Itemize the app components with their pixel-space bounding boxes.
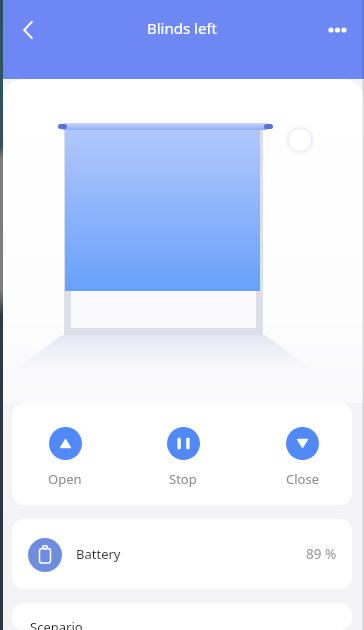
staticText: Stop xyxy=(169,470,197,488)
button[interactable]: Back xyxy=(6,8,50,52)
button[interactable]: Open xyxy=(39,403,91,505)
button[interactable]: Close xyxy=(276,403,328,505)
staticText: Close xyxy=(286,470,319,488)
staticText: Scenario xyxy=(30,618,83,630)
button[interactable]: More options xyxy=(314,8,358,52)
staticText: Open xyxy=(48,470,82,488)
staticText: Battery xyxy=(76,545,121,563)
button[interactable]: Power xyxy=(289,129,311,151)
staticText: 89 % xyxy=(306,545,337,563)
staticText: Blinds left xyxy=(147,18,217,38)
button[interactable]: Battery xyxy=(12,519,352,589)
button[interactable]: Stop xyxy=(157,403,209,505)
